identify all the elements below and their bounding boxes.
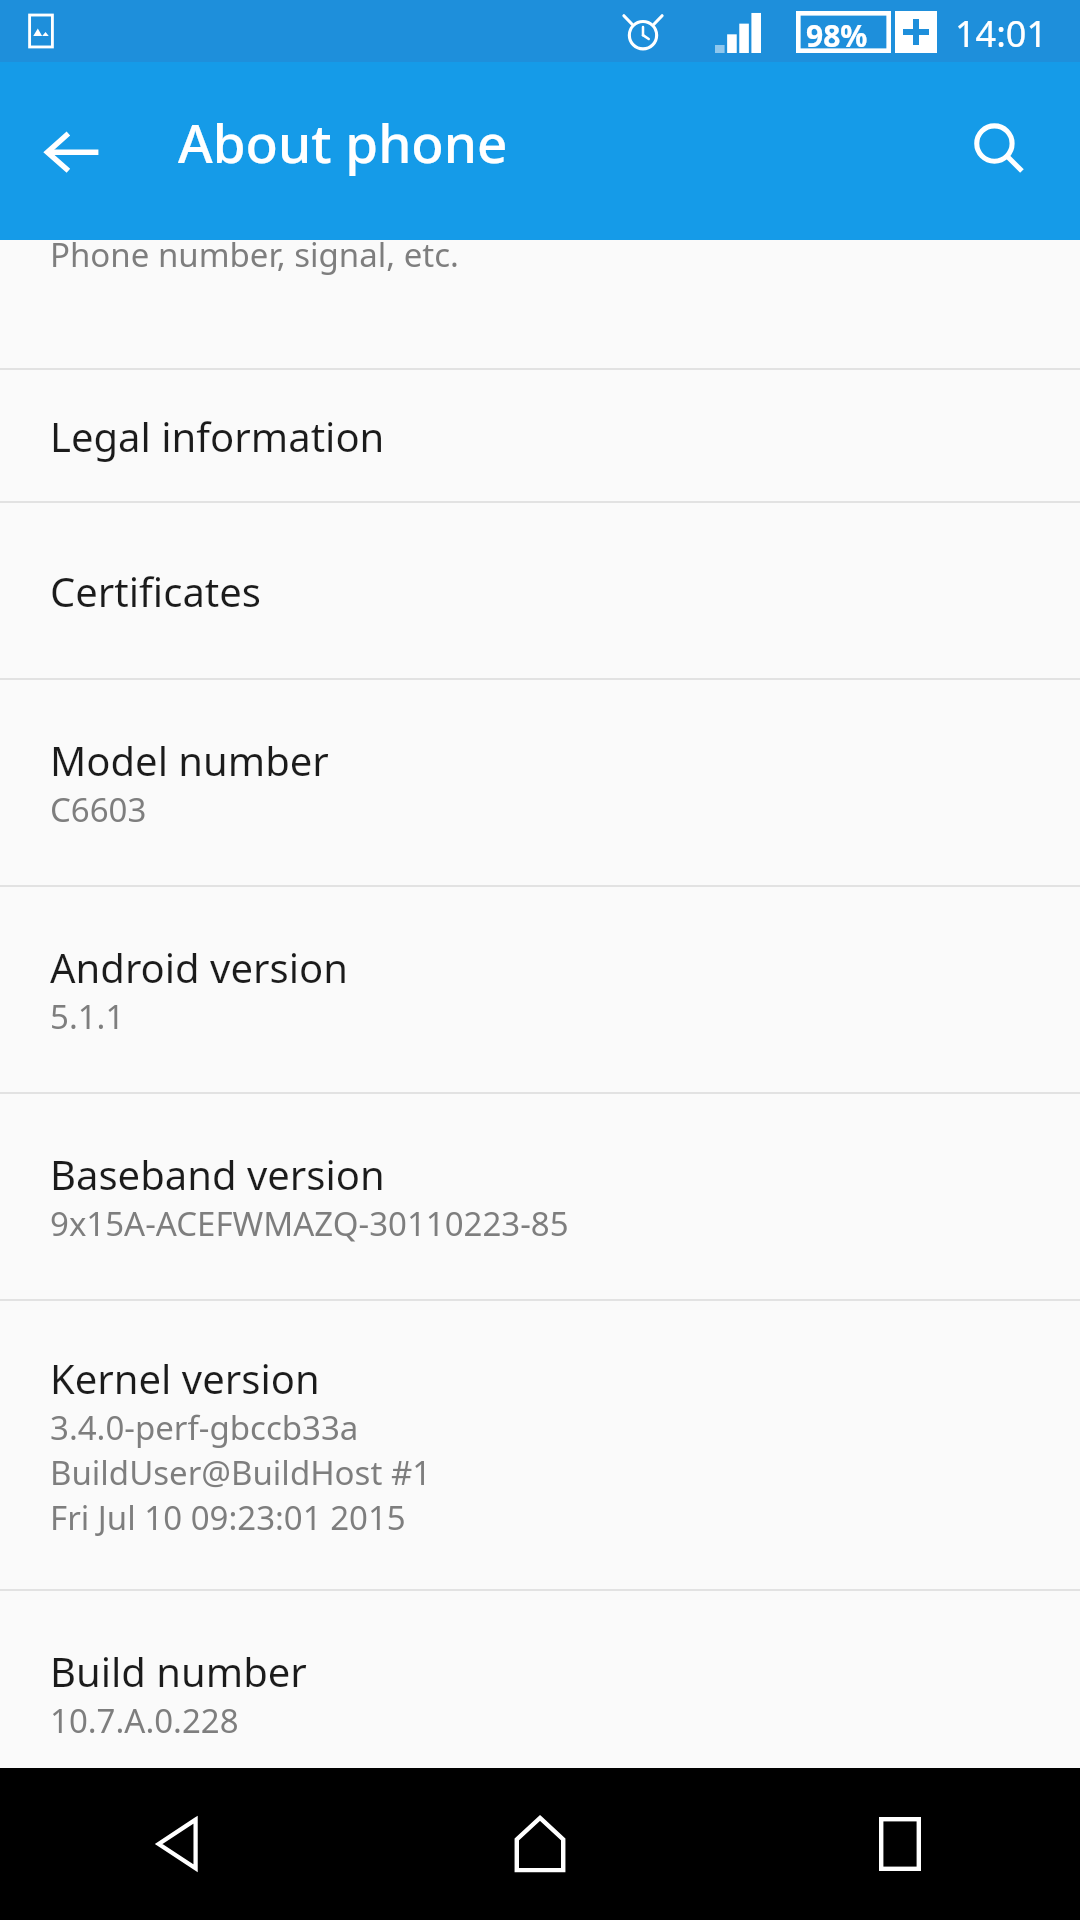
button[interactable]: Kernel version — [0, 1301, 1080, 1589]
button[interactable]: Status — [0, 240, 1080, 368]
staticText: 9x15A-ACEFWMAZQ-30110223-85 — [50, 1201, 569, 1246]
staticText: Fri Jul 10 09:23:01 2015 — [50, 1495, 406, 1540]
button[interactable]: Android version — [0, 887, 1080, 1092]
staticText: Legal information — [50, 409, 385, 463]
staticText: About phone — [178, 106, 508, 178]
staticText: 3.4.0-perf-gbccb33a — [50, 1405, 359, 1450]
staticText: Baseband version — [50, 1147, 385, 1201]
button[interactable]: Certificates — [0, 503, 1080, 678]
staticText: 14:01 — [955, 9, 1048, 58]
staticText: Android version — [50, 940, 348, 994]
button[interactable]: Model number — [0, 680, 1080, 885]
button[interactable]: Back — [0, 1768, 360, 1920]
staticText: BuildUser@BuildHost #1 — [50, 1450, 432, 1495]
button[interactable]: Legal information — [0, 370, 1080, 501]
staticText: Certificates — [50, 564, 261, 618]
staticText: 5.1.1 — [50, 994, 125, 1039]
staticText: Model number — [50, 733, 329, 787]
staticText: Phone number, signal, etc. — [50, 240, 459, 277]
staticText: 98% — [806, 15, 868, 56]
staticText: Build number — [50, 1644, 307, 1698]
button[interactable]: Baseband version — [0, 1094, 1080, 1299]
button[interactable]: Build number — [0, 1591, 1080, 1796]
button[interactable]: Recent apps — [720, 1768, 1080, 1920]
button[interactable]: Navigate up — [12, 62, 132, 240]
staticText: 10.7.A.0.228 — [50, 1698, 239, 1743]
button[interactable]: Search — [940, 62, 1060, 240]
button[interactable]: Home — [360, 1768, 720, 1920]
staticText: Kernel version — [50, 1351, 320, 1405]
staticText: C6603 — [50, 787, 147, 832]
